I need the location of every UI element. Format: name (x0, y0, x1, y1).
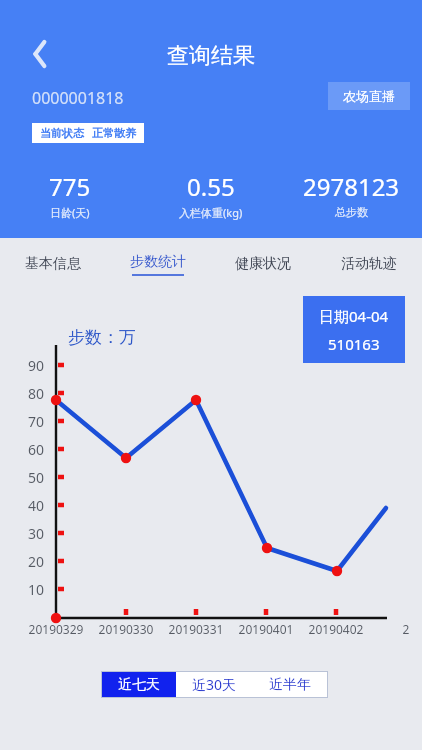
staticText: 20190330 (91, 621, 161, 637)
button[interactable]: 当前状态 (32, 123, 144, 143)
button[interactable]: 近30天 (176, 671, 252, 698)
staticText: 入栏体重(kg) (179, 205, 243, 220)
button[interactable]: 近半年 (252, 671, 328, 698)
button[interactable]: 日期04-04 (303, 296, 405, 363)
staticText: 30 (14, 524, 44, 543)
staticText: 510163 (328, 334, 380, 354)
button[interactable]: 活动轨迹 (316, 244, 422, 284)
button[interactable]: Back (18, 33, 60, 75)
staticText: 20190402 (301, 621, 371, 637)
staticText: 20190401 (231, 621, 301, 637)
staticText: 近30天 (192, 675, 237, 694)
staticText: 70 (14, 412, 44, 431)
button[interactable]: 2978123 (281, 170, 422, 219)
staticText: 40 (14, 496, 44, 515)
staticText: 查询结果 (0, 42, 422, 70)
staticText: 10 (14, 580, 44, 599)
staticText: 2978123 (303, 170, 400, 203)
staticText: 活动轨迹 (341, 255, 397, 273)
staticText: 步数统计 (130, 253, 186, 271)
staticText: 0000001818 (32, 87, 124, 109)
button[interactable]: 0.55 (140, 170, 281, 220)
staticText: 2 (371, 621, 422, 637)
staticText: 农场直播 (343, 88, 395, 104)
button[interactable]: 健康状况 (210, 244, 316, 284)
staticText: 60 (14, 440, 44, 459)
staticText: 20190331 (161, 621, 231, 637)
staticText: 当前状态 (40, 126, 84, 140)
button[interactable]: 基本信息 (0, 244, 105, 284)
staticText: 0.55 (187, 170, 235, 203)
staticText: 健康状况 (235, 255, 291, 273)
button[interactable]: 步数统计 (105, 244, 210, 284)
staticText: 日龄(天) (50, 205, 90, 220)
staticText: 20190329 (21, 621, 91, 637)
staticText: 正常散养 (92, 126, 136, 140)
staticText: 775 (49, 170, 91, 203)
staticText: 50 (14, 468, 44, 487)
staticText: 近半年 (269, 676, 311, 694)
staticText: 日期04-04 (319, 306, 389, 326)
staticText: 总步数 (335, 205, 368, 219)
staticText: 80 (14, 384, 44, 403)
staticText: 20 (14, 552, 44, 571)
button[interactable]: 近七天 (101, 671, 176, 698)
staticText: 90 (14, 356, 44, 375)
staticText: 基本信息 (25, 255, 81, 273)
button[interactable]: 农场直播 (328, 82, 410, 110)
button[interactable]: 775 (0, 170, 140, 220)
staticText: 近七天 (118, 676, 160, 694)
staticText: 步数：万 (68, 327, 136, 348)
